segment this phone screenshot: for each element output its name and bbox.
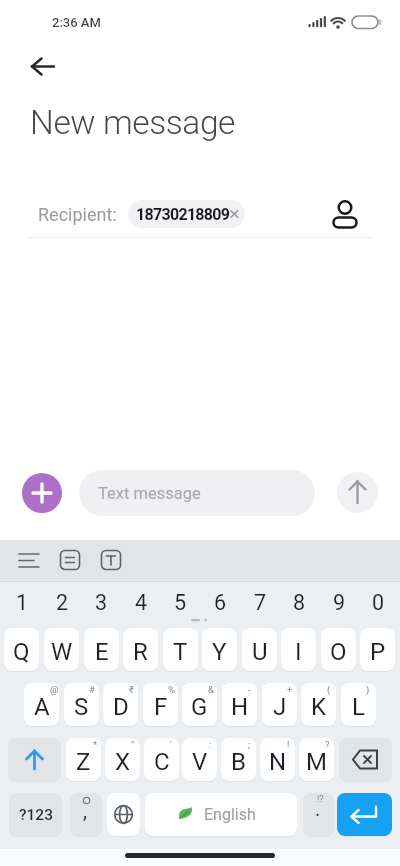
button[interactable]: S: [64, 683, 99, 726]
staticText: 2:36 AM: [52, 15, 101, 30]
staticText: 9: [333, 590, 346, 615]
button[interactable]: [14, 545, 44, 575]
staticText: Text message: [98, 484, 201, 503]
staticText: ': [170, 739, 172, 750]
staticText: 18730218809: [136, 205, 230, 224]
staticText: W: [51, 638, 73, 666]
staticText: @: [50, 684, 59, 695]
staticText: R: [133, 638, 148, 666]
button[interactable]: 5: [160, 582, 200, 621]
staticText: U: [252, 638, 268, 666]
button[interactable]: Z: [66, 738, 101, 781]
button[interactable]: L: [341, 683, 376, 726]
button[interactable]: X: [105, 738, 140, 781]
button[interactable]: M: [299, 738, 334, 781]
staticText: 6: [214, 590, 227, 615]
staticText: !?: [317, 794, 324, 805]
staticText: ): [366, 684, 370, 695]
staticText: .: [315, 797, 321, 820]
button[interactable]: [22, 473, 62, 513]
staticText: 8: [293, 590, 306, 615]
button[interactable]: F: [143, 683, 178, 726]
button[interactable]: [326, 192, 364, 236]
staticText: ,: [83, 799, 87, 822]
button[interactable]: Q: [4, 628, 39, 671]
button[interactable]: [70, 793, 102, 836]
button[interactable]: A: [24, 683, 59, 726]
button[interactable]: [339, 738, 392, 781]
button[interactable]: 4: [121, 582, 161, 621]
staticText: D: [113, 693, 129, 721]
button[interactable]: P: [360, 628, 395, 671]
staticText: 0: [372, 590, 385, 615]
staticText: ;: [248, 739, 251, 750]
button[interactable]: E: [84, 628, 119, 671]
button[interactable]: ?123: [9, 793, 62, 836]
staticText: ?123: [19, 806, 53, 824]
staticText: (: [327, 684, 331, 695]
staticText: Q: [13, 638, 30, 666]
staticText: 5: [174, 590, 187, 615]
staticText: A: [34, 693, 50, 721]
button[interactable]: U: [242, 628, 277, 671]
button[interactable]: J: [262, 683, 297, 726]
button[interactable]: 9: [319, 582, 359, 621]
button[interactable]: 2: [42, 582, 82, 621]
button[interactable]: [96, 545, 126, 575]
staticText: +: [287, 684, 293, 695]
staticText: L: [352, 693, 365, 721]
button[interactable]: [20, 52, 64, 82]
button[interactable]: [107, 793, 140, 836]
button[interactable]: 3: [81, 582, 121, 621]
button[interactable]: 8: [279, 582, 319, 621]
button[interactable]: N: [260, 738, 295, 781]
staticText: 1: [16, 590, 29, 615]
staticText: 2: [56, 590, 69, 615]
staticText: ₹: [129, 684, 134, 695]
button[interactable]: W: [44, 628, 79, 671]
button[interactable]: C: [144, 738, 179, 781]
button[interactable]: [55, 545, 85, 575]
staticText: !: [287, 739, 290, 750]
button[interactable]: [303, 793, 334, 836]
button[interactable]: [145, 793, 297, 836]
button[interactable]: G: [182, 683, 217, 726]
button[interactable]: [337, 472, 378, 513]
staticText: O: [330, 638, 347, 666]
button[interactable]: 6: [200, 582, 240, 621]
staticText: 3: [95, 590, 108, 615]
staticText: G: [191, 693, 208, 721]
staticText: &: [208, 684, 214, 695]
staticText: Recipient:: [38, 204, 117, 225]
staticText: C: [154, 748, 170, 776]
button[interactable]: T: [163, 628, 198, 671]
staticText: English: [204, 805, 256, 824]
button[interactable]: [8, 738, 61, 781]
button[interactable]: Y: [202, 628, 237, 671]
staticText: H: [231, 693, 249, 721]
staticText: J: [273, 693, 287, 721]
button[interactable]: I: [281, 628, 316, 671]
button[interactable]: 7: [240, 582, 280, 621]
button[interactable]: K: [301, 683, 336, 726]
staticText: E: [95, 638, 109, 666]
button[interactable]: [337, 793, 392, 836]
button[interactable]: 0: [358, 582, 398, 621]
staticText: V: [192, 748, 208, 776]
staticText: New message: [30, 103, 236, 142]
staticText: 7: [254, 590, 267, 615]
staticText: Y: [212, 638, 227, 666]
button[interactable]: V: [182, 738, 217, 781]
button[interactable]: O: [321, 628, 356, 671]
staticText: B: [231, 748, 246, 776]
button[interactable]: Text message: [79, 470, 315, 516]
button[interactable]: H: [222, 683, 257, 726]
staticText: K: [311, 693, 327, 721]
staticText: *: [93, 739, 98, 750]
staticText: F: [154, 693, 168, 721]
button[interactable]: B: [221, 738, 256, 781]
button[interactable]: D: [103, 683, 138, 726]
button[interactable]: 18730218809: [128, 200, 245, 228]
button[interactable]: R: [123, 628, 158, 671]
button[interactable]: 1: [2, 582, 42, 621]
